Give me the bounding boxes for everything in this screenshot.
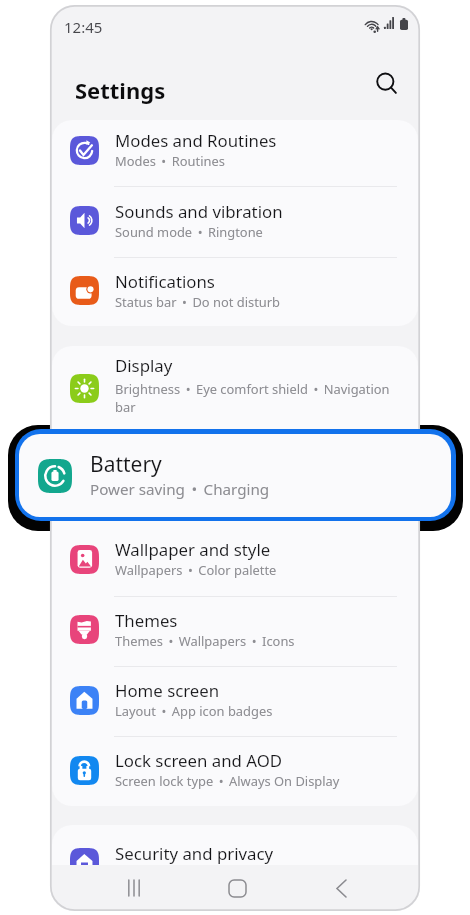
- staticText: Wallpaper and style: [115, 538, 271, 561]
- button[interactable]: [52, 736, 418, 806]
- staticText: Power saving • Charging: [115, 476, 268, 494]
- staticText: Lock screen and AOD: [115, 749, 283, 772]
- button[interactable]: Battery: [19, 434, 451, 517]
- staticText: Battery: [115, 453, 173, 476]
- staticText: Themes • Wallpapers • Icons: [115, 632, 295, 650]
- button[interactable]: [52, 257, 418, 326]
- button[interactable]: [52, 433, 418, 523]
- button[interactable]: Home: [214, 865, 260, 911]
- button[interactable]: [52, 666, 418, 736]
- staticText: Sound mode • Ringtone: [115, 223, 263, 241]
- staticText: Themes: [115, 609, 178, 632]
- staticText: Status bar • Do not disturb: [115, 293, 281, 311]
- staticText: Display: [115, 354, 173, 377]
- staticText: Power saving • Charging: [90, 479, 270, 500]
- button[interactable]: [52, 346, 418, 433]
- button[interactable]: [52, 596, 418, 666]
- staticText: Sounds and vibration: [115, 200, 283, 223]
- staticText: Notifications: [115, 270, 215, 293]
- staticText: 12:45: [64, 17, 103, 37]
- staticText: Wallpapers • Color palette: [115, 561, 277, 579]
- button[interactable]: [52, 186, 418, 257]
- staticText: Screen lock type • Always On Display: [115, 772, 340, 790]
- button[interactable]: [52, 120, 418, 186]
- staticText: Home screen: [115, 679, 220, 702]
- button[interactable]: Search: [368, 65, 406, 103]
- button[interactable]: Recents: [111, 865, 157, 911]
- button[interactable]: [52, 825, 418, 885]
- button[interactable]: Back: [318, 865, 364, 911]
- staticText: Security and privacy: [115, 842, 274, 865]
- staticText: Battery: [90, 450, 162, 479]
- staticText: Modes • Routines: [115, 152, 225, 170]
- staticText: bar: [115, 398, 136, 416]
- staticText: Settings: [75, 75, 166, 105]
- button[interactable]: [52, 523, 418, 596]
- staticText: Layout • App icon badges: [115, 702, 273, 720]
- staticText: Modes and Routines: [115, 129, 277, 152]
- staticText: Brightness • Eye comfort shield • Naviga…: [115, 380, 390, 398]
